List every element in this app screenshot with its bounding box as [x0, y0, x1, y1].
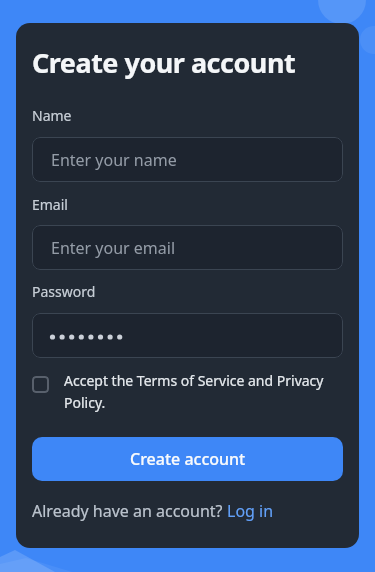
staticText: Name	[32, 106, 72, 125]
button[interactable]: Enter your name	[32, 137, 343, 182]
staticText: Enter your name	[51, 149, 177, 171]
button[interactable]: Enter your email	[32, 225, 343, 270]
staticText: Create your account	[32, 44, 296, 81]
staticText: Create account	[130, 448, 246, 470]
staticText: Email	[32, 195, 68, 214]
button[interactable]	[32, 376, 49, 393]
staticText: Enter your email	[51, 237, 176, 259]
staticText: Password	[32, 282, 96, 301]
button[interactable]	[32, 313, 343, 358]
button[interactable]: Log in	[227, 500, 274, 522]
button[interactable]: Create account	[32, 437, 343, 481]
staticText: Accept the Terms of Service and Privacy …	[64, 371, 324, 412]
staticText: Already have an account?	[32, 500, 227, 522]
